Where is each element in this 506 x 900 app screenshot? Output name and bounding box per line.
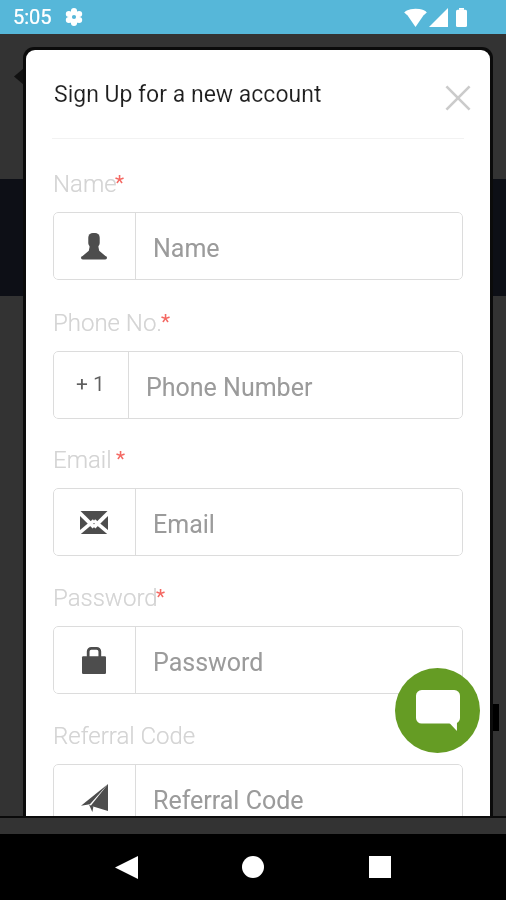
staticText: Referral Code	[153, 786, 304, 815]
staticText: Phone Number	[146, 373, 313, 402]
button[interactable]: Recent apps	[352, 839, 408, 895]
staticText: Email	[153, 510, 215, 539]
button[interactable]: Email	[53, 488, 463, 556]
button[interactable]: Chat support	[395, 668, 480, 753]
button[interactable]: Back	[98, 839, 154, 895]
button[interactable]: Referral Code	[53, 764, 463, 816]
button[interactable]: Close	[436, 76, 480, 120]
button[interactable]: + 1	[53, 351, 463, 419]
staticText: Password	[153, 648, 264, 677]
staticText: Sign Up for a new account	[54, 81, 322, 108]
staticText: *	[116, 447, 126, 472]
staticText: Email	[53, 446, 118, 474]
staticText: *	[156, 585, 166, 610]
staticText: Password	[53, 584, 158, 612]
staticText: + 1	[76, 372, 105, 397]
staticText: Name	[53, 170, 117, 198]
button[interactable]: Home	[225, 839, 281, 895]
staticText: Name	[153, 234, 220, 263]
staticText: Phone No.	[53, 309, 163, 337]
button[interactable]: Name	[53, 212, 463, 280]
staticText: *	[115, 171, 125, 196]
staticText: *	[161, 310, 171, 335]
staticText: Referral Code	[53, 722, 196, 750]
staticText: 5:05	[13, 5, 52, 28]
button[interactable]: Password	[53, 626, 463, 694]
